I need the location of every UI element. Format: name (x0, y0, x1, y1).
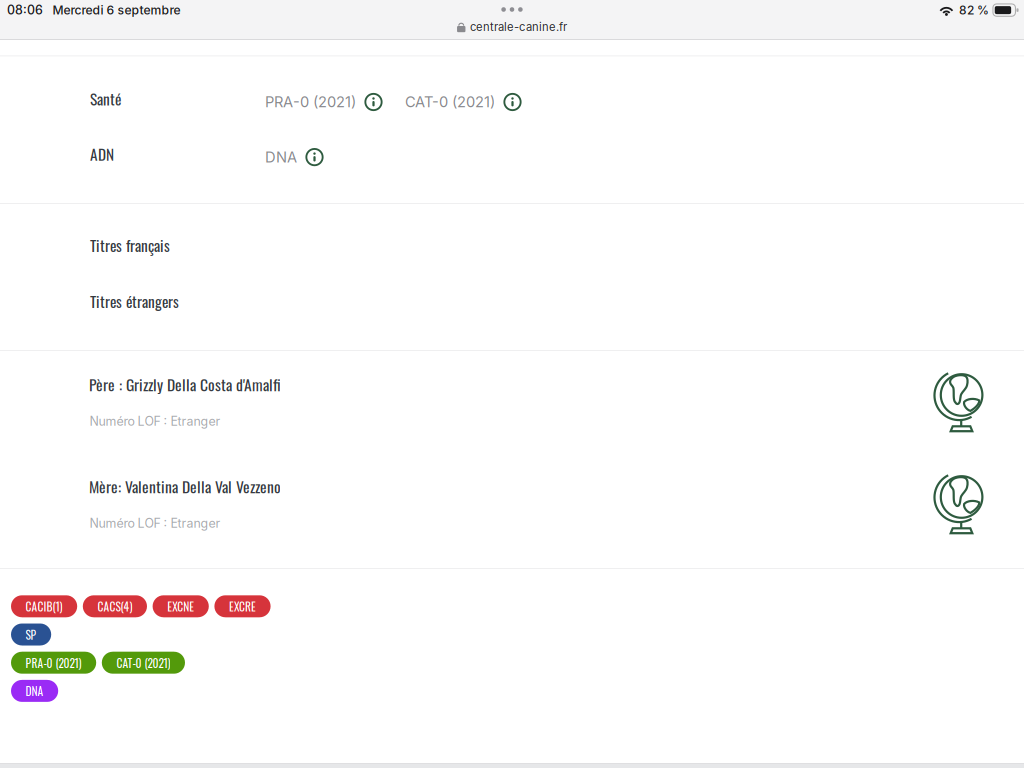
button[interactable]: EXCRE (214, 595, 271, 617)
staticText: PRA-0 (2021) (26, 654, 82, 671)
staticText: centrale-canine.fr (470, 20, 567, 34)
button[interactable]: DNA (11, 680, 58, 702)
button[interactable]: CACIB(1) (11, 595, 77, 617)
staticText: Mercredi 6 septembre (52, 3, 180, 17)
button[interactable]: CAT-0 (2021) (102, 652, 185, 674)
button[interactable]: DNA (265, 148, 323, 166)
staticText: DNA (26, 682, 44, 699)
button[interactable]: Adresse : centrale-canine.fr (0, 20, 1024, 34)
button[interactable]: PRA-0 (2021) (11, 652, 96, 674)
button[interactable]: Père : Grizzly Della Costa d'Amalfi (89, 374, 589, 394)
staticText: Père : Grizzly Della Costa d'Amalfi (89, 372, 281, 396)
staticText: Numéro LOF : Etranger (89, 516, 220, 531)
button[interactable]: CACS(4) (83, 595, 147, 617)
button[interactable]: Mère: Valentina Della Val Vezzeno (89, 476, 589, 496)
staticText: Titres français (90, 234, 170, 256)
button[interactable]: CAT-0 (2021) (405, 93, 521, 111)
staticText: ADN (90, 142, 114, 165)
button[interactable]: Chien étranger (934, 373, 984, 432)
staticText: 08:06 (7, 3, 43, 18)
staticText: EXCRE (229, 598, 256, 615)
staticText: CAT-0 (2021) (405, 93, 495, 111)
button[interactable]: SP (11, 623, 51, 645)
staticText: CACIB(1) (26, 598, 63, 615)
staticText: 82 % (959, 3, 989, 17)
staticText: Titres étrangers (90, 290, 179, 312)
staticText: SP (26, 626, 37, 643)
staticText: Numéro LOF : Etranger (89, 414, 220, 429)
button[interactable]: PRA-0 (2021) (265, 93, 382, 111)
staticText: EXCNE (167, 598, 194, 615)
staticText: DNA (265, 148, 297, 166)
staticText: Santé (90, 87, 121, 110)
staticText: CAT-0 (2021) (116, 654, 170, 671)
staticText: CACS(4) (97, 598, 132, 615)
staticText: PRA-0 (2021) (265, 93, 356, 111)
staticText: Mère: Valentina Della Val Vezzeno (89, 474, 281, 498)
button[interactable]: EXCNE (153, 595, 209, 617)
button[interactable]: Chien étranger (934, 475, 984, 534)
